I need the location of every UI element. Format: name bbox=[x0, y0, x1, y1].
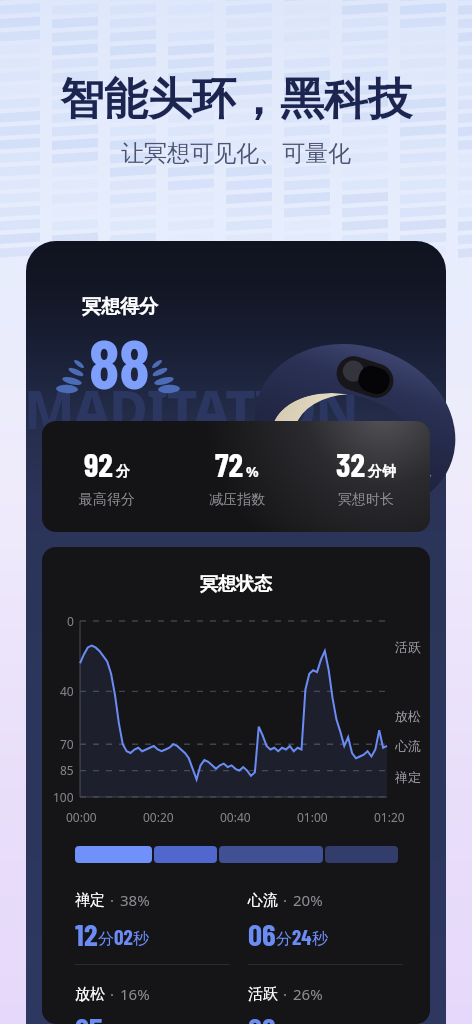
staticText: 冥想时长 bbox=[338, 491, 394, 509]
button[interactable]: 放松 bbox=[75, 984, 248, 1024]
staticText: 00:00 bbox=[66, 809, 97, 825]
staticText: 禅定 bbox=[395, 769, 421, 785]
staticText: 禅定 bbox=[75, 891, 105, 910]
staticText: 70 bbox=[60, 736, 74, 752]
staticText: 08 bbox=[248, 1009, 276, 1024]
button[interactable]: 92 bbox=[42, 421, 430, 532]
button[interactable]: 92 bbox=[42, 444, 172, 509]
staticText: 05 bbox=[75, 1009, 103, 1024]
staticText: MADITATION bbox=[26, 372, 358, 444]
staticText: · bbox=[110, 890, 115, 910]
staticText: 00:20 bbox=[143, 809, 174, 825]
button[interactable]: 72 bbox=[172, 444, 301, 509]
staticText: 减压指数 bbox=[209, 491, 265, 509]
staticText: 06 bbox=[248, 915, 276, 952]
staticText: 秒 bbox=[133, 929, 149, 949]
button[interactable] bbox=[75, 846, 398, 863]
staticText: 12 bbox=[75, 915, 98, 952]
staticText: 心流 bbox=[248, 891, 278, 910]
staticText: % bbox=[246, 462, 259, 481]
staticText: 放松 bbox=[75, 985, 105, 1004]
staticText: 冥想状态 bbox=[200, 573, 272, 596]
staticText: 20% bbox=[293, 890, 323, 910]
staticText: 38% bbox=[120, 890, 150, 910]
button[interactable]: 禅定 bbox=[75, 890, 248, 952]
staticText: 智能头环，黑科技 bbox=[60, 72, 412, 127]
staticText: 01:00 bbox=[297, 809, 328, 825]
staticText: 88 bbox=[89, 320, 150, 403]
staticText: 分 bbox=[276, 929, 292, 949]
staticText: 放松 bbox=[395, 708, 421, 724]
staticText: 活跃 bbox=[395, 639, 421, 655]
staticText: 最高得分 bbox=[79, 491, 135, 509]
staticText: 100 bbox=[53, 789, 74, 805]
staticText: 活跃 bbox=[248, 985, 278, 1004]
staticText: 40 bbox=[60, 683, 74, 699]
staticText: 85 bbox=[60, 762, 74, 778]
staticText: 分钟 bbox=[368, 463, 396, 481]
staticText: 16% bbox=[120, 984, 150, 1004]
staticText: 分 bbox=[116, 463, 130, 481]
staticText: 分 bbox=[98, 929, 114, 949]
staticText: 26% bbox=[293, 984, 323, 1004]
staticText: 00:40 bbox=[220, 809, 251, 825]
staticText: · bbox=[283, 890, 288, 910]
staticText: 让冥想可见化、可量化 bbox=[121, 139, 351, 168]
staticText: 24 bbox=[292, 924, 312, 949]
staticText: 02 bbox=[114, 924, 133, 949]
staticText: 0 bbox=[67, 613, 74, 629]
staticText: 心流 bbox=[395, 738, 421, 754]
button[interactable]: 32 bbox=[301, 444, 430, 509]
staticText: 秒 bbox=[312, 929, 328, 949]
staticText: · bbox=[283, 984, 288, 1004]
staticText: 01:20 bbox=[374, 809, 405, 825]
staticText: 72 bbox=[215, 444, 243, 484]
button[interactable]: 心流 bbox=[248, 890, 421, 952]
staticText: · bbox=[110, 984, 115, 1004]
button[interactable]: 活跃 bbox=[248, 984, 421, 1024]
staticText: 32 bbox=[336, 444, 365, 484]
staticText: 冥想得分 bbox=[82, 295, 158, 319]
staticText: 92 bbox=[84, 444, 113, 484]
